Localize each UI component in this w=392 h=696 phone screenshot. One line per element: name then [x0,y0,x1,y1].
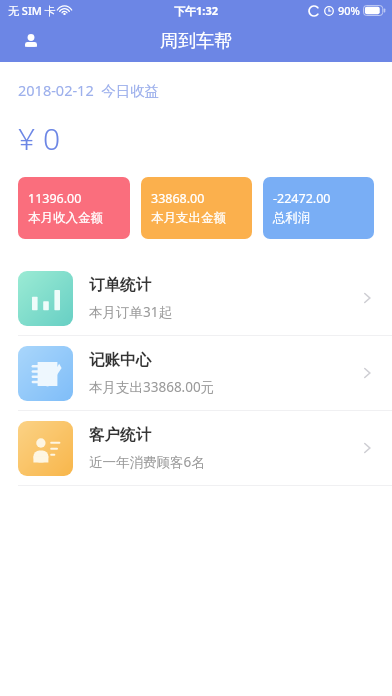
button[interactable]: Profile [14,24,48,58]
staticText: 下午1:32 [174,3,218,18]
staticText: 33868.00 [151,190,205,207]
staticText: 2018-02-12 今日收益 [18,80,160,100]
staticText: 客户统计 [89,425,151,445]
button[interactable]: 11396.00 [18,177,130,239]
button[interactable]: -22472.00 [263,177,374,239]
staticText: 记账中心 [89,350,151,370]
staticText: 总利润 [273,210,311,226]
staticText: ¥ 0 [18,118,61,159]
staticText: 订单统计 [89,275,151,295]
staticText: 近一年消费顾客6名 [89,453,205,471]
staticText: 无 SIM 卡 [8,3,56,18]
button[interactable]: 订单统计 [0,261,392,335]
staticText: 周到车帮 [160,30,232,53]
button[interactable]: 33868.00 [141,177,252,239]
button[interactable]: 记账中心 [0,336,392,410]
button[interactable]: 客户统计 [0,411,392,485]
staticText: 本月支出33868.00元 [89,378,215,396]
staticText: 11396.00 [28,190,82,207]
staticText: -22472.00 [273,190,331,207]
staticText: 本月订单31起 [89,303,172,321]
staticText: 本月支出金额 [151,210,226,226]
staticText: 本月收入金额 [28,210,103,226]
staticText: 90% [338,3,360,18]
